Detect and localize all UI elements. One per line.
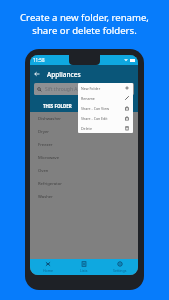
button[interactable]: Washer <box>30 190 138 203</box>
button[interactable]: Delete <box>78 123 133 133</box>
button[interactable]: Refrigerator <box>30 177 138 190</box>
button[interactable]: ALL ITEMS <box>84 100 138 112</box>
button[interactable]: New Folder <box>78 83 133 93</box>
staticText: Microwave <box>38 155 60 161</box>
button[interactable]: Settings <box>102 259 138 275</box>
staticText: Sift through Appliances <box>45 86 100 93</box>
staticText: Dishwasher <box>38 116 62 122</box>
staticText: Washer <box>38 194 53 200</box>
button[interactable]: Share - Can View <box>78 103 133 113</box>
button[interactable]: Dishwasher <box>30 112 138 125</box>
button[interactable]: Home <box>30 259 66 275</box>
staticText: Lists <box>80 268 88 273</box>
staticText: Delete <box>81 126 92 131</box>
staticText: Home <box>43 268 53 273</box>
staticText: Freezer <box>38 142 53 148</box>
staticText: Create a new folder, rename, share or de… <box>0 11 169 37</box>
staticText: Rename <box>81 96 95 101</box>
button[interactable]: THIS FOLDER <box>30 100 84 112</box>
staticText: Refrigerator <box>38 181 62 187</box>
staticText: Dryer <box>38 129 50 135</box>
staticText: Settings <box>113 268 127 273</box>
staticText: New Folder <box>81 86 101 91</box>
staticText: THIS FOLDER <box>43 103 72 109</box>
staticText: Oven <box>38 168 49 174</box>
button[interactable]: Dryer <box>30 125 138 138</box>
button[interactable]: Sift through Appliances <box>34 83 134 95</box>
staticText: 11:58 <box>33 57 45 63</box>
button[interactable]: Share - Can Edit <box>78 113 133 123</box>
staticText: ALL ITEMS <box>100 103 123 109</box>
staticText: Share - Can View <box>81 106 109 111</box>
staticText: Share - Can Edit <box>81 116 108 121</box>
staticText: Appliances <box>47 70 81 79</box>
button[interactable]: Back <box>32 69 42 79</box>
button[interactable]: Lists <box>66 259 102 275</box>
button[interactable]: Rename <box>78 93 133 103</box>
button[interactable]: Freezer <box>30 138 138 151</box>
button[interactable]: Microwave <box>30 151 138 164</box>
